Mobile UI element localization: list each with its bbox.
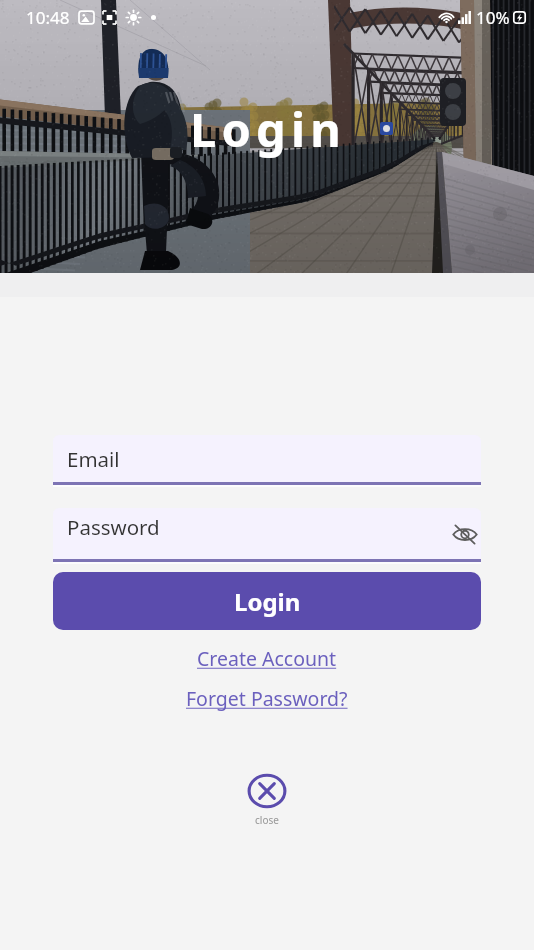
button[interactable]: Forget Password? bbox=[0, 685, 534, 712]
staticText: close bbox=[255, 813, 279, 827]
button[interactable]: Email bbox=[53, 435, 481, 482]
staticText: Create Account bbox=[197, 645, 337, 672]
staticText: Forget Password? bbox=[186, 685, 348, 712]
button[interactable]: Create Account bbox=[0, 645, 534, 672]
button[interactable]: Login bbox=[53, 572, 481, 630]
staticText: 10:48 bbox=[26, 6, 70, 29]
staticText: Login bbox=[190, 97, 346, 161]
button[interactable]: Password bbox=[53, 508, 481, 559]
staticText: Login bbox=[234, 585, 301, 618]
button[interactable]: Show password bbox=[450, 519, 480, 549]
button[interactable]: Close bbox=[0, 773, 534, 827]
staticText: 10% bbox=[476, 6, 510, 29]
staticText: Password bbox=[67, 513, 160, 541]
staticText: Email bbox=[67, 445, 120, 473]
